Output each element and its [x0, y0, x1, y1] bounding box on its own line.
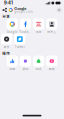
staticText: 阅读 — [36, 67, 42, 71]
staticText: 9:41 — [4, 0, 13, 6]
button[interactable]: 清单 — [32, 18, 45, 33]
staticText: 清单 — [36, 30, 42, 34]
staticText: google.com — [14, 10, 33, 13]
staticText: 分享 — [2, 14, 10, 19]
staticText: Twitter — [15, 45, 25, 49]
button[interactable]: 联系人 — [45, 18, 58, 33]
staticText: 收藏 — [9, 67, 15, 71]
staticText: 截图 — [49, 67, 55, 71]
button[interactable]: Close — [56, 7, 62, 13]
button[interactable]: 更多 — [0, 33, 13, 48]
button[interactable]: 收藏 — [6, 55, 19, 70]
staticText: 操作 — [2, 51, 10, 56]
button[interactable]: Share — [2, 6, 7, 14]
staticText: Google — [7, 30, 18, 34]
staticText: 复制 — [22, 67, 28, 71]
button[interactable]: Google — [6, 18, 19, 33]
button[interactable]: Twitter — [13, 33, 26, 48]
button[interactable]: Faceb… — [19, 18, 32, 33]
staticText: 更多 — [4, 45, 10, 49]
button[interactable]: 复制 — [19, 55, 32, 70]
staticText: Faceb… — [19, 30, 31, 34]
staticText: Google — [14, 6, 26, 11]
button[interactable]: 截图 — [45, 55, 58, 70]
button[interactable]: 阅读 — [32, 55, 45, 70]
staticText: 联系人 — [47, 30, 56, 34]
